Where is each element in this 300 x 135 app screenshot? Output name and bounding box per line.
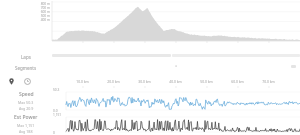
button[interactable]: Segments <box>0 64 52 72</box>
staticText: Segments <box>15 65 37 71</box>
staticText: 60.0 km <box>231 79 244 84</box>
staticText: 1,151 <box>53 113 62 117</box>
staticText: 10.0 km <box>76 79 89 84</box>
staticText: Avg 188 <box>19 129 33 134</box>
staticText: 30.0 km <box>138 79 151 84</box>
staticText: Max 50.3 <box>18 100 34 105</box>
staticText: 20.0 km <box>107 79 120 84</box>
button[interactable]: Range handle <box>291 65 296 68</box>
button[interactable]: Speed <box>0 88 52 113</box>
staticText: 400 m <box>40 18 50 22</box>
staticText: Max 1,151 <box>17 123 35 128</box>
button[interactable]: Laps <box>0 53 52 61</box>
button[interactable]: Time <box>22 76 33 87</box>
staticText: 40.0 km <box>169 79 182 84</box>
staticText: ▪ <box>175 64 178 67</box>
staticText: 800 m <box>40 2 50 6</box>
staticText: 700 m <box>40 6 50 10</box>
staticText: Est Power <box>14 114 38 121</box>
staticText: 70.0 km <box>262 79 275 84</box>
staticText: 600 m <box>40 10 50 14</box>
staticText: Avg 20.9 <box>19 106 34 111</box>
staticText: 50.3 <box>53 88 60 92</box>
button[interactable]: Map <box>6 76 17 87</box>
staticText: 0.0 <box>53 109 58 113</box>
staticText: 0 <box>53 131 55 135</box>
staticText: Speed <box>19 91 34 98</box>
staticText: Laps <box>21 54 31 60</box>
button[interactable]: Est Power <box>0 113 52 135</box>
staticText: 50.0 km <box>200 79 213 84</box>
staticText: 500 m <box>40 14 50 18</box>
